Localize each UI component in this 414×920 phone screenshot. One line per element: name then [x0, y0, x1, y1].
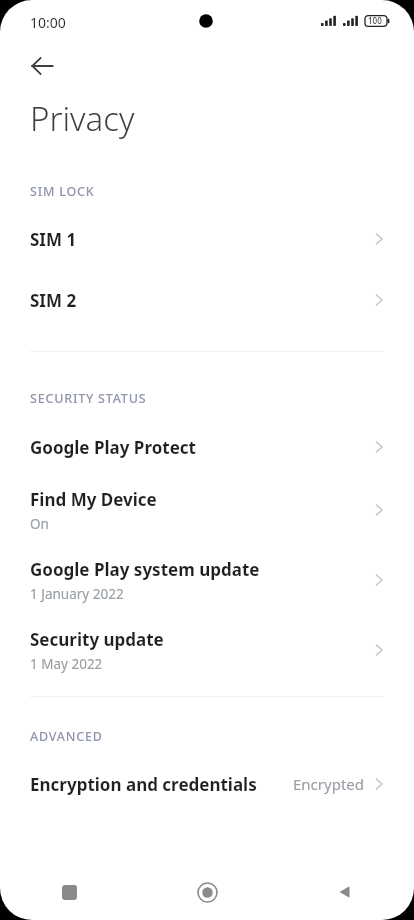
staticText: Privacy: [30, 96, 135, 141]
staticText: 1 January 2022: [30, 585, 124, 603]
button[interactable]: SIM 1: [0, 215, 414, 263]
staticText: SIM 1: [30, 228, 77, 251]
button[interactable]: Google Play system update: [0, 550, 414, 610]
button[interactable]: Back: [18, 42, 66, 90]
staticText: 10:00: [30, 13, 66, 32]
staticText: Google Play system update: [30, 558, 260, 581]
staticText: Encrypted: [293, 774, 364, 794]
button[interactable]: Google Play Protect: [0, 423, 414, 471]
button[interactable]: Recent apps: [0, 864, 138, 920]
button[interactable]: Home: [138, 864, 276, 920]
staticText: Encryption and credentials: [30, 773, 257, 796]
staticText: SECURITY STATUS: [30, 390, 147, 407]
staticText: Google Play Protect: [30, 436, 196, 459]
button[interactable]: Security update: [0, 620, 414, 680]
staticText: SIM LOCK: [30, 183, 95, 200]
button[interactable]: SIM 2: [0, 276, 414, 324]
staticText: Find My Device: [30, 488, 157, 511]
button[interactable]: Back: [276, 864, 414, 920]
staticText: 1 May 2022: [30, 655, 103, 673]
button[interactable]: Encryption and credentials: [0, 760, 414, 808]
staticText: SIM 2: [30, 289, 77, 312]
button[interactable]: Find My Device: [0, 480, 414, 540]
staticText: Security update: [30, 628, 164, 651]
staticText: On: [30, 515, 49, 533]
staticText: 100: [368, 15, 382, 26]
staticText: ADVANCED: [30, 728, 103, 745]
